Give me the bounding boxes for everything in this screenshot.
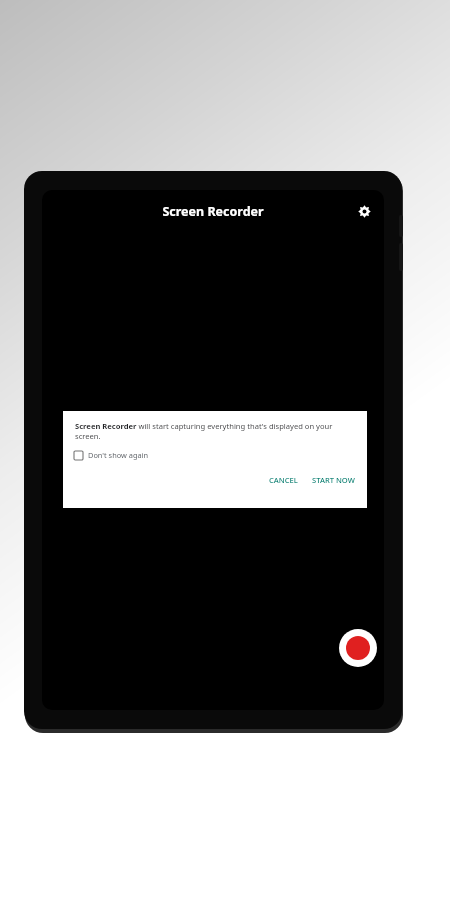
- button[interactable]: Don't show again: [74, 450, 149, 460]
- button[interactable]: Settings: [350, 197, 378, 225]
- staticText: Screen Recorder: [162, 203, 264, 220]
- staticText: START NOW: [312, 475, 355, 485]
- staticText: Screen Recorder will start capturing eve…: [75, 421, 357, 441]
- button[interactable]: START NOW: [308, 471, 359, 489]
- staticText: CANCEL: [269, 475, 298, 485]
- button[interactable]: CANCEL: [265, 471, 302, 489]
- button[interactable]: Start recording: [339, 629, 377, 667]
- staticText: Don't show again: [88, 450, 149, 460]
